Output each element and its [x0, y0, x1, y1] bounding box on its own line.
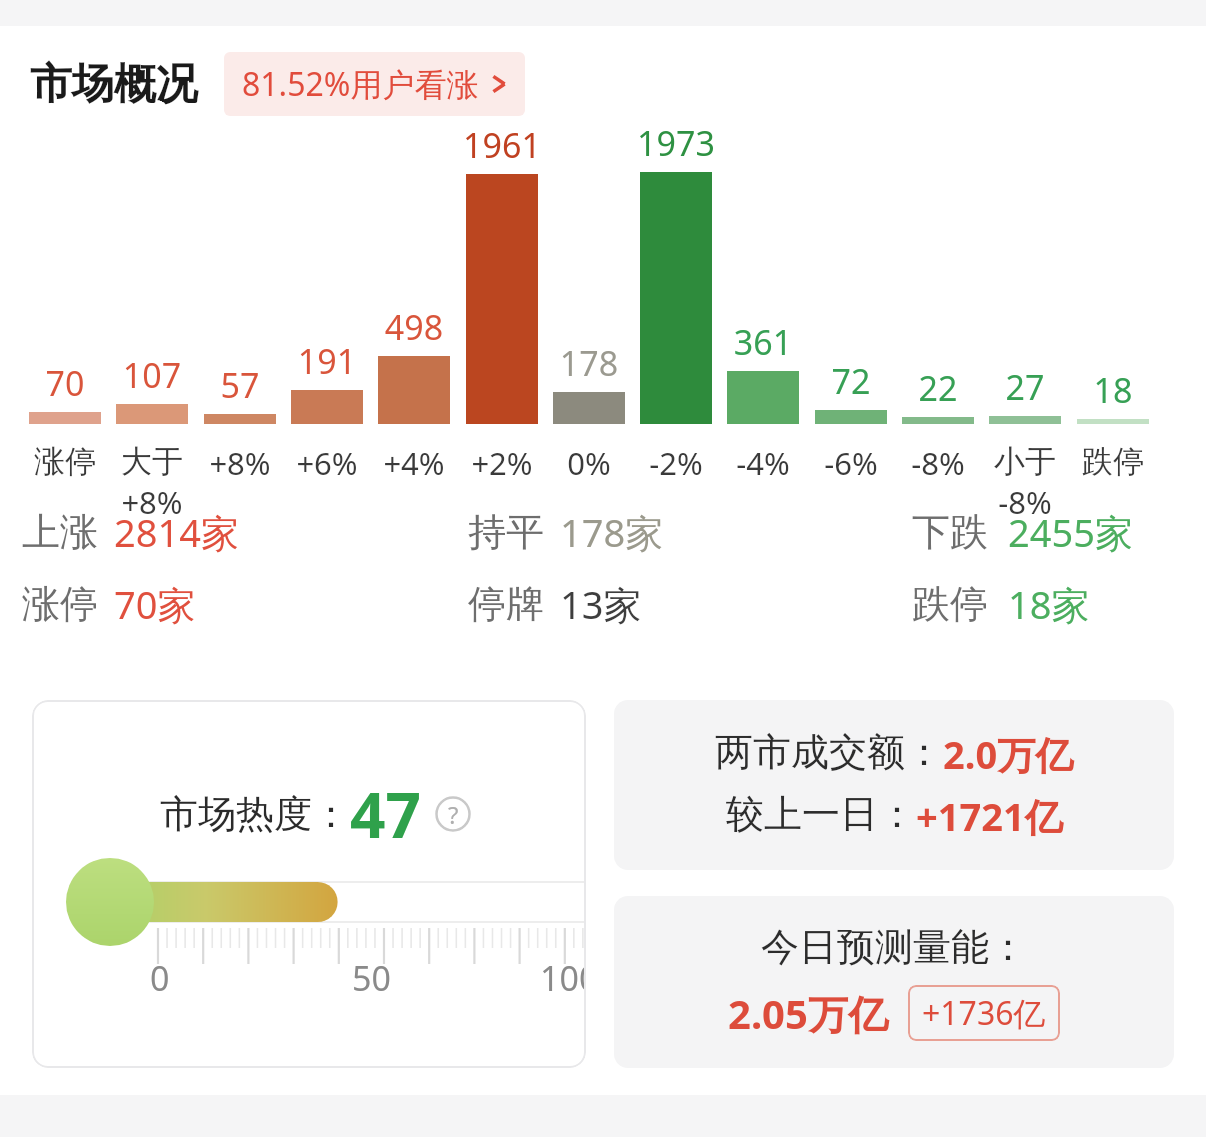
staticText: -8%: [911, 442, 965, 484]
staticText: 1973: [616, 120, 736, 166]
staticText: 下跌: [912, 508, 988, 556]
staticText: 191: [267, 338, 387, 384]
staticText: 18家: [1008, 578, 1090, 630]
staticText: +2%: [471, 442, 533, 484]
staticText: 81.52%用户看涨: [242, 62, 479, 106]
staticText: 涨停: [22, 580, 98, 628]
staticText: 0: [150, 955, 170, 1001]
staticText: 较上一日：: [726, 790, 916, 838]
staticText: +6%: [296, 442, 358, 484]
staticText: -8%: [998, 481, 1052, 523]
staticText: 涨停: [34, 442, 96, 481]
staticText: 361: [703, 319, 823, 365]
staticText: 18: [1053, 367, 1173, 413]
staticText: 498: [354, 304, 474, 350]
staticText: 大于: [121, 442, 183, 481]
staticText: 2455家: [1008, 506, 1133, 558]
staticText: 市场热度：: [160, 790, 350, 838]
staticText: 57: [180, 362, 300, 408]
staticText: 市场概况: [30, 58, 198, 111]
staticText: +1736亿: [922, 991, 1046, 1035]
staticText: +8%: [121, 481, 183, 523]
staticText: 100: [540, 955, 586, 1001]
staticText: 跌停: [912, 580, 988, 628]
staticText: 持平: [468, 508, 544, 556]
button[interactable]: 81.52%用户看涨: [224, 52, 525, 116]
staticText: 70家: [114, 578, 196, 630]
staticText: 70: [5, 360, 125, 406]
staticText: 小于: [994, 442, 1056, 481]
staticText: 107: [92, 352, 212, 398]
staticText: +1721亿: [916, 790, 1063, 842]
staticText: 0%: [567, 442, 611, 484]
button[interactable]: 市场热度说明: [435, 796, 471, 832]
staticText: 13家: [560, 578, 642, 630]
staticText: 50: [352, 955, 391, 1001]
button[interactable]: 两市成交额：: [614, 700, 1174, 870]
staticText: 2.05万亿: [728, 986, 888, 1041]
staticText: +8%: [209, 442, 271, 484]
staticText: 47: [350, 772, 421, 856]
staticText: 停牌: [468, 580, 544, 628]
staticText: 178家: [560, 506, 664, 558]
button[interactable]: 今日预测量能：: [614, 896, 1174, 1068]
staticText: 178: [529, 340, 649, 386]
staticText: 上涨: [22, 508, 98, 556]
staticText: 2.0万亿: [943, 728, 1074, 780]
staticText: -6%: [824, 442, 878, 484]
staticText: 两市成交额：: [715, 728, 943, 776]
staticText: -4%: [736, 442, 790, 484]
staticText: 今日预测量能：: [761, 923, 1027, 971]
staticText: 72: [791, 358, 911, 404]
staticText: 1961: [442, 122, 562, 168]
staticText: 跌停: [1082, 442, 1144, 481]
staticText: 27: [965, 364, 1085, 410]
staticText: ?: [448, 798, 459, 831]
staticText: 2814家: [114, 506, 239, 558]
staticText: 22: [878, 365, 998, 411]
button[interactable]: 市场热度：: [32, 700, 586, 1068]
staticText: -2%: [649, 442, 703, 484]
staticText: +4%: [383, 442, 445, 484]
